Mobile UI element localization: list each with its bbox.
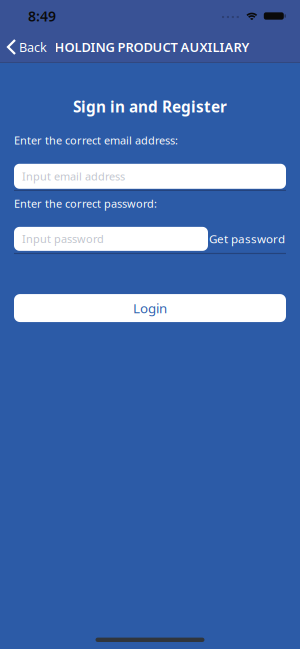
button[interactable]: Back <box>0 38 47 56</box>
staticText: HOLDING PRODUCT AUXILIARY <box>54 38 249 56</box>
staticText: Back <box>19 38 47 56</box>
staticText: Login <box>133 299 167 317</box>
button[interactable]: Input password <box>14 227 208 251</box>
staticText: 8:49 <box>28 6 56 26</box>
button[interactable]: Login <box>14 294 286 322</box>
button[interactable]: Input email address <box>14 164 286 189</box>
staticText: Enter the correct password: <box>14 196 157 211</box>
button[interactable]: Get password <box>208 231 286 247</box>
staticText: Get password <box>209 231 285 247</box>
staticText: Sign in and Register <box>73 96 227 117</box>
staticText: Enter the correct email address: <box>14 133 178 148</box>
staticText: Input email address <box>22 169 125 184</box>
staticText: Input password <box>22 231 104 246</box>
